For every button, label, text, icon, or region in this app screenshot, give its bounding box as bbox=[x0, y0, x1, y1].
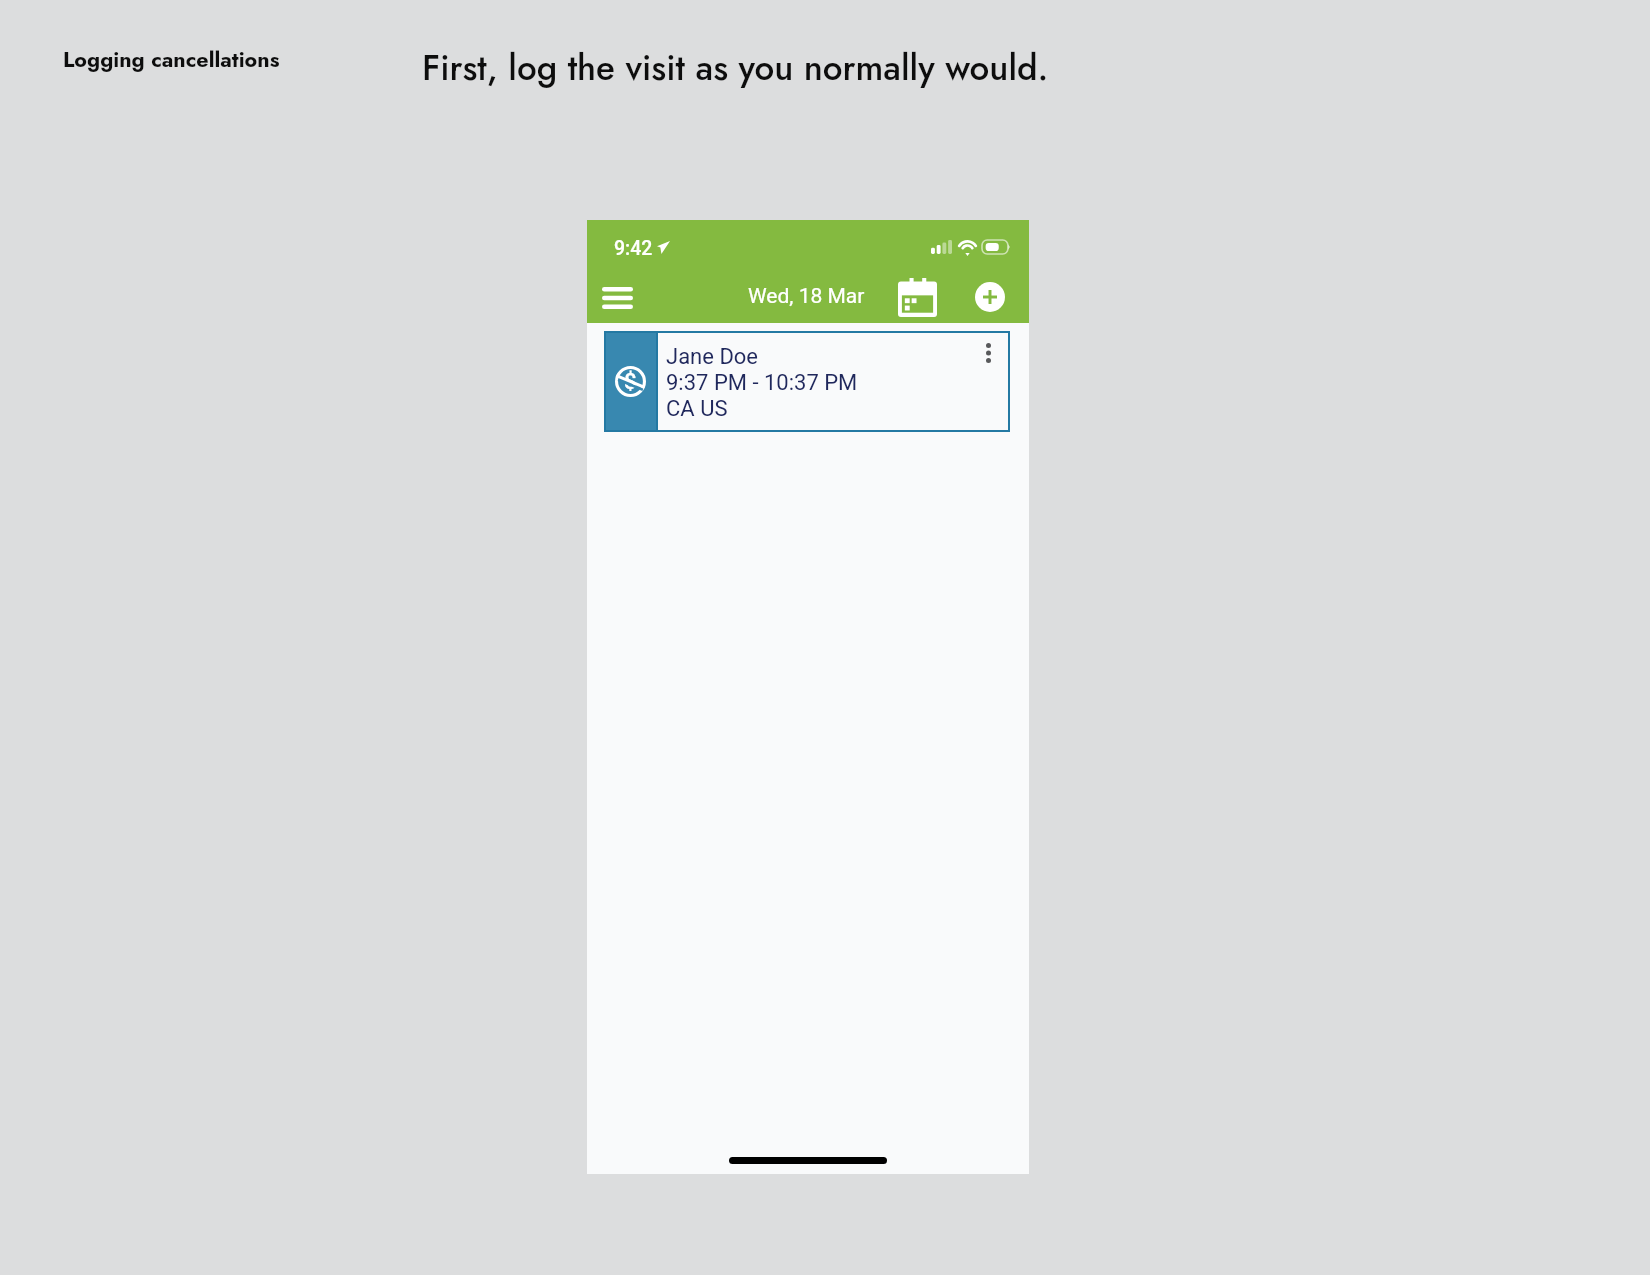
staticText: Jane Doe bbox=[666, 344, 759, 370]
button[interactable]: Open navigation menu bbox=[595, 280, 639, 315]
staticText: Wed, 18 Mar bbox=[748, 284, 865, 309]
button[interactable]: Add visit bbox=[975, 282, 1005, 312]
staticText: 9:37 PM - 10:37 PM bbox=[666, 370, 858, 396]
staticText: $ bbox=[624, 369, 637, 395]
button[interactable]: Pick a date bbox=[893, 275, 941, 319]
staticText: First, log the visit as you normally wou… bbox=[422, 43, 1049, 94]
button[interactable]: More options bbox=[975, 338, 1001, 368]
staticText: Logging cancellations bbox=[63, 44, 280, 75]
button[interactable]: $ bbox=[604, 331, 1010, 432]
staticText: CA US bbox=[666, 396, 728, 422]
staticText: 9:42 bbox=[614, 237, 653, 260]
